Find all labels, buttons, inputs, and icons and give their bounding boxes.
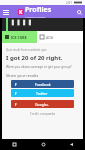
button[interactable]: Back <box>57 139 85 150</box>
staticText: f <box>15 82 17 86</box>
button[interactable]: f <box>11 100 74 108</box>
staticText: a website profiler <box>25 15 46 18</box>
staticText: Google+ <box>35 102 49 107</box>
staticText: Twitter <box>36 91 48 96</box>
staticText: ADA <box>46 35 53 40</box>
staticText: K <box>19 9 23 15</box>
staticText: Quiz result from a website quiz <box>6 48 47 52</box>
button[interactable]: Menu <box>0 6 12 18</box>
staticText: Credit: compwebs <box>30 112 56 116</box>
button[interactable]: Home <box>29 139 57 150</box>
staticText: Were you above-average or get your group… <box>6 65 72 69</box>
button[interactable]: f <box>11 89 74 97</box>
button[interactable]: ADA <box>37 31 83 43</box>
staticText: I got 20 of 20 right. <box>6 54 63 62</box>
staticText: Share your results <box>6 73 39 78</box>
staticText: ICE CUBE <box>11 35 27 40</box>
staticText: 2:01 <box>66 1 72 5</box>
button[interactable]: f <box>11 80 74 88</box>
button[interactable]: Recents <box>0 139 29 150</box>
button[interactable]: ICE CUBE <box>2 31 37 43</box>
staticText: Facebook <box>35 82 51 87</box>
button[interactable]: Search <box>73 6 85 18</box>
staticText: f <box>15 91 17 95</box>
staticText: Profiles <box>25 5 52 15</box>
staticText: f <box>15 102 17 106</box>
